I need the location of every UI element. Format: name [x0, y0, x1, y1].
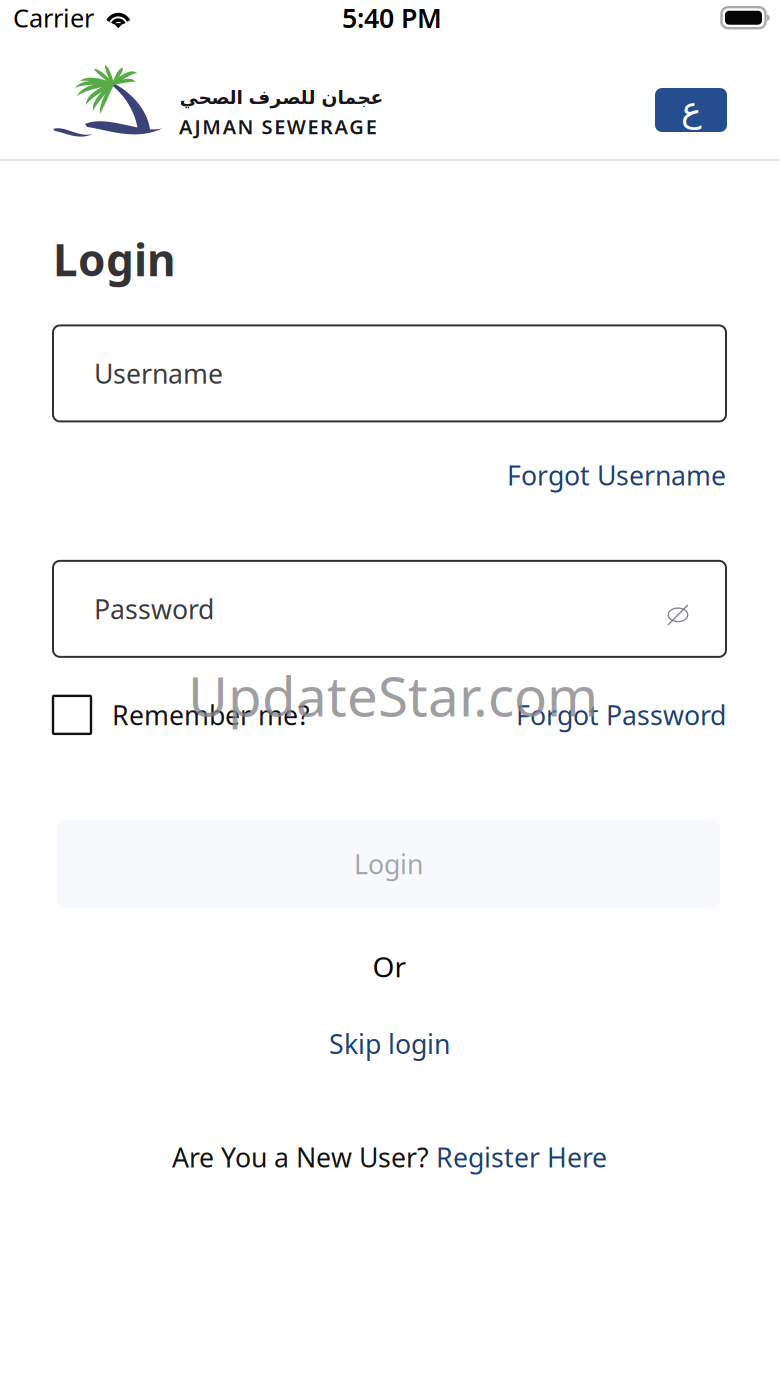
staticText: Forgot Username [507, 457, 726, 493]
button[interactable]: Login [57, 820, 720, 908]
button[interactable]: Forgot Password [516, 697, 726, 732]
staticText: Login [354, 846, 423, 881]
staticText: Remember me? [112, 697, 310, 732]
staticText: ع [680, 90, 701, 130]
staticText: Skip login [329, 1026, 450, 1061]
staticText: Are You a New User? [172, 1139, 436, 1175]
button[interactable]: Remember me? [53, 696, 310, 734]
staticText: Username [94, 356, 223, 391]
staticText: Forgot Password [516, 697, 726, 732]
button[interactable]: Register Here [436, 1139, 607, 1175]
button[interactable]: Show password [661, 592, 698, 626]
button[interactable]: Forgot Username [507, 457, 726, 493]
staticText: Password [94, 591, 214, 626]
button[interactable]: ع [655, 88, 727, 132]
staticText: Register Here [436, 1139, 607, 1175]
staticText: عجمان للصرف الصحي [179, 87, 383, 108]
staticText: 5:40 PM [342, 0, 442, 35]
staticText: Login [53, 230, 176, 288]
staticText: Carrier [13, 1, 94, 34]
staticText: Or [372, 948, 406, 985]
staticText: UpdateStar.com [188, 659, 598, 732]
staticText: AJMAN SEWERAGE [179, 113, 377, 140]
button[interactable]: Skip login [329, 1026, 450, 1061]
